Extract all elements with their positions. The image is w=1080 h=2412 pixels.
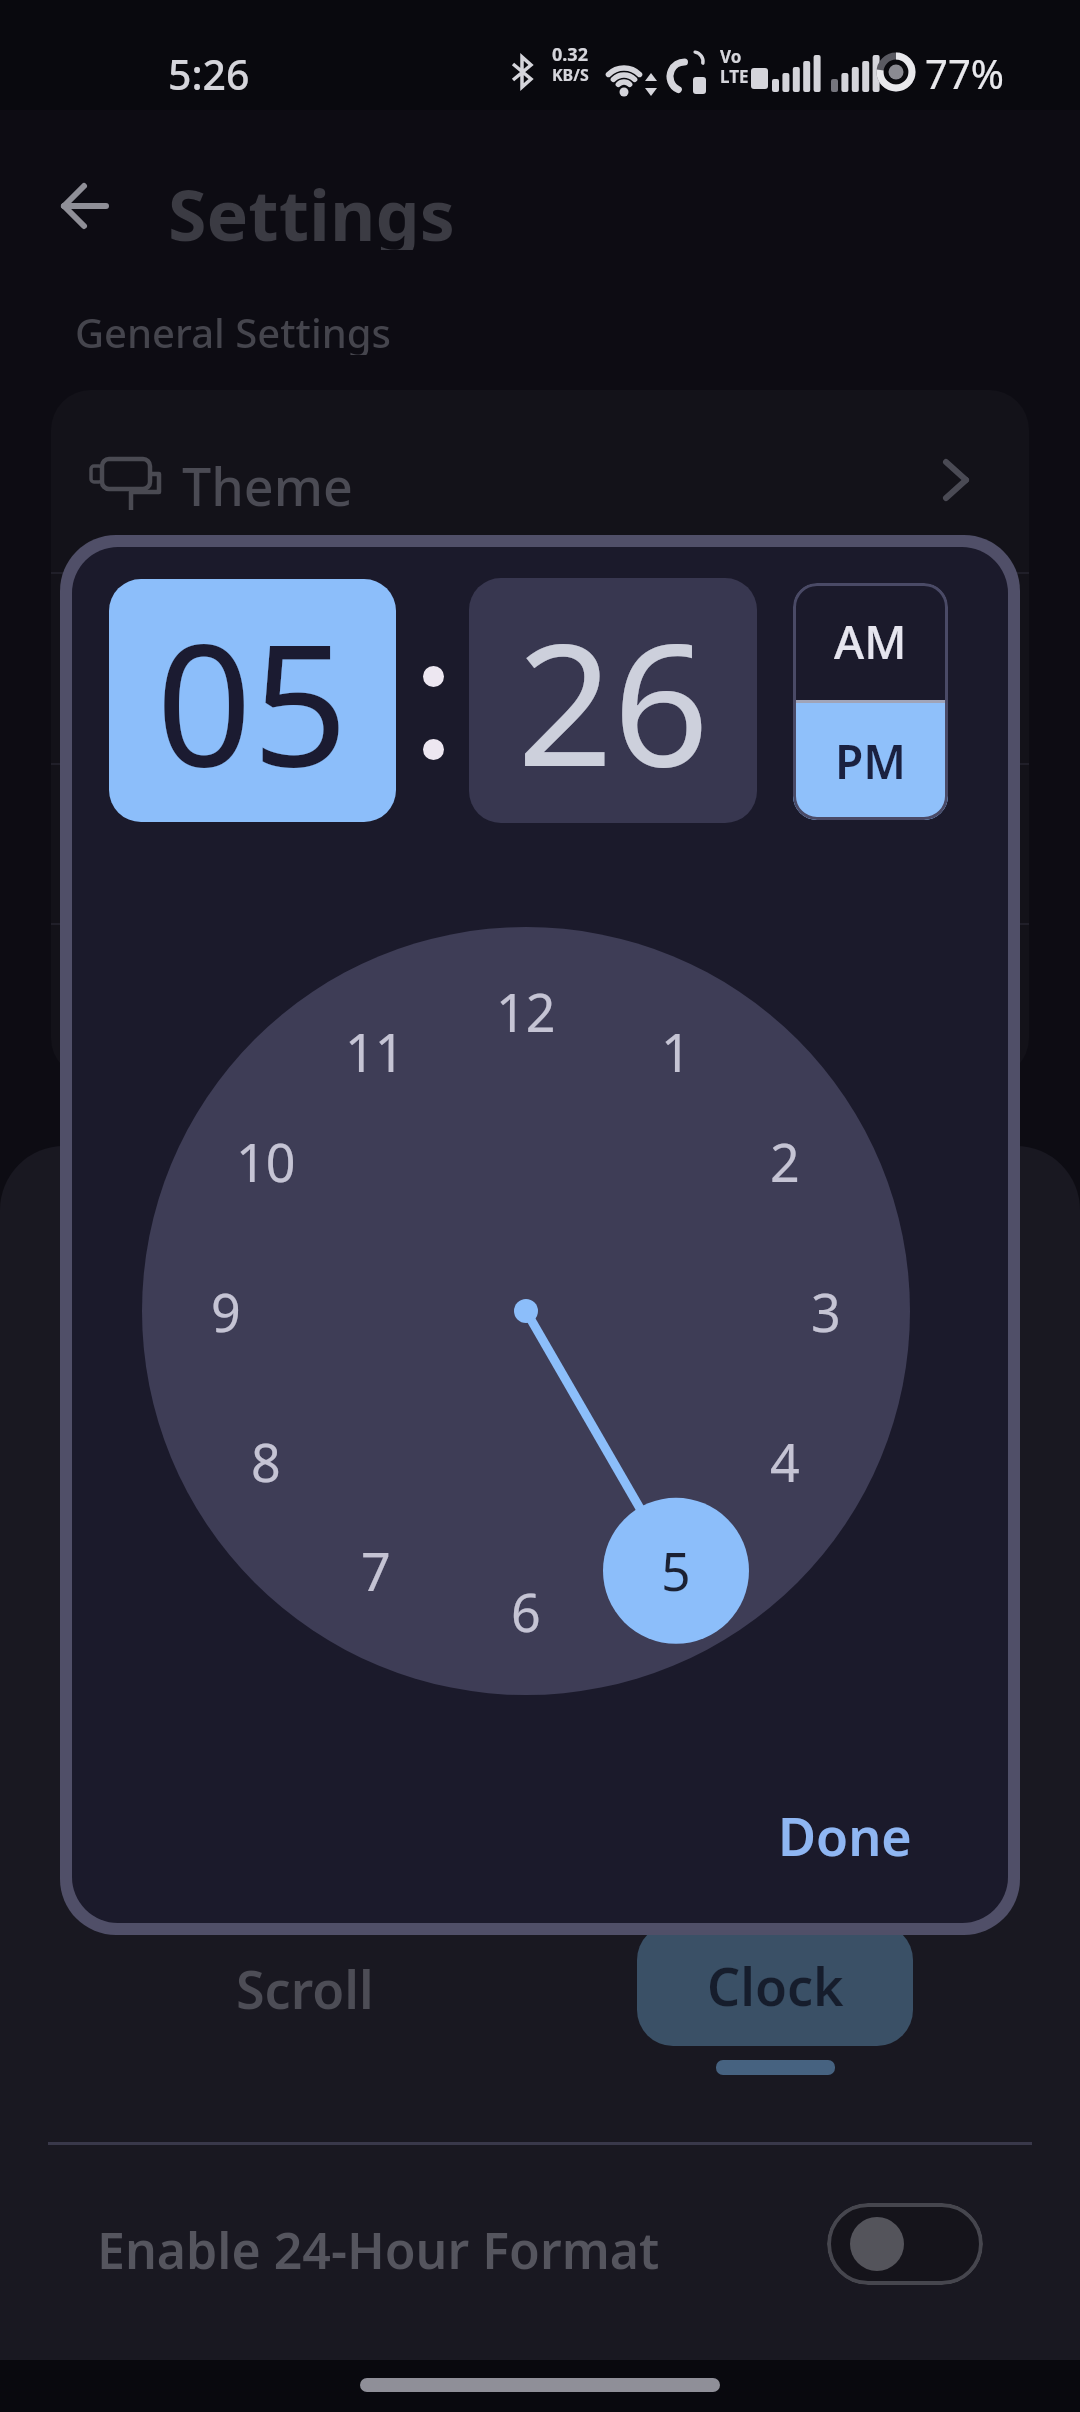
button[interactable]: PM: [793, 703, 948, 820]
staticText: 6: [511, 1576, 541, 1647]
button[interactable]: [60, 182, 110, 230]
staticText: Done: [778, 1800, 912, 1864]
staticText: 5: [661, 1535, 691, 1606]
staticText: 11: [345, 1016, 405, 1087]
staticText: Scroll: [236, 1953, 374, 2024]
staticText: LTE: [720, 65, 749, 87]
staticText: KB/S: [552, 64, 589, 86]
staticText: 0.32: [552, 42, 588, 66]
button[interactable]: 26: [469, 578, 757, 823]
staticText: Theme: [182, 450, 353, 510]
button[interactable]: AM: [793, 583, 948, 700]
staticText: 26: [517, 586, 710, 815]
staticText: 2: [770, 1126, 800, 1197]
staticText: Enable 24-Hour Format: [97, 2216, 660, 2272]
staticText: AM: [834, 610, 907, 673]
button[interactable]: [827, 2203, 983, 2285]
staticText: 9: [211, 1276, 241, 1347]
staticText: Clock: [707, 1950, 844, 2021]
staticText: 77%: [925, 46, 1004, 96]
staticText: Settings: [168, 166, 455, 250]
button[interactable]: Scroll: [170, 1950, 440, 2026]
staticText: 7: [361, 1535, 391, 1606]
staticText: Vo: [720, 45, 742, 67]
button[interactable]: Done: [760, 1800, 930, 1864]
staticText: 1: [661, 1016, 691, 1087]
staticText: 10: [236, 1126, 296, 1197]
staticText: 05: [156, 586, 349, 815]
button[interactable]: Clock: [637, 1924, 913, 2046]
staticText: 3: [811, 1276, 841, 1347]
staticText: General Settings: [75, 305, 391, 355]
button[interactable]: 05: [109, 579, 396, 822]
staticText: 12: [496, 976, 556, 1047]
staticText: 4: [770, 1426, 800, 1497]
staticText: 8: [251, 1426, 281, 1497]
staticText: PM: [835, 730, 907, 793]
button[interactable]: [51, 390, 1029, 572]
staticText: 5:26: [168, 46, 250, 94]
